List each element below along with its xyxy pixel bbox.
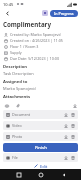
staticText: Supply [10, 50, 22, 55]
staticText: Description [3, 64, 28, 70]
staticText: Assigned to [3, 79, 28, 85]
button[interactable]: Add photo [3, 102, 10, 109]
button[interactable]: Document [3, 110, 78, 119]
button[interactable]: Download Photo [63, 134, 69, 140]
staticText: Complimentary Supplies [3, 20, 78, 28]
button[interactable]: Delete Document [70, 112, 76, 118]
button[interactable]: Delete Photo [70, 134, 76, 140]
staticText: File [12, 155, 18, 160]
staticText: 10:45 [3, 2, 14, 7]
staticText: In Progress [54, 11, 74, 16]
button[interactable]: Video [3, 121, 78, 130]
button[interactable]: Download Video [63, 123, 69, 129]
staticText: Created by: Marko Spanojević [10, 32, 62, 37]
button[interactable]: Status [42, 10, 48, 16]
staticText: Video [12, 123, 22, 128]
button[interactable]: File [3, 153, 78, 162]
staticText: Task Description [3, 71, 34, 76]
staticText: Marko Spanojević [3, 86, 37, 91]
button[interactable]: Edit [3, 163, 78, 169]
button[interactable]: In Progress [50, 10, 78, 17]
staticText: Document [12, 112, 31, 117]
button[interactable]: Delete Video [70, 123, 76, 129]
staticText: Floor 1 / Room 3 [10, 44, 39, 49]
staticText: Finish [35, 145, 47, 151]
button[interactable]: Back [59, 170, 68, 179]
button[interactable]: Back [3, 9, 11, 17]
button[interactable]: Photo [3, 132, 78, 141]
button[interactable]: Download all [71, 102, 78, 109]
staticText: Edit [40, 164, 48, 169]
staticText: Created on : 4/26/2023 | 11:05 [10, 38, 63, 43]
staticText: Photo [12, 134, 23, 139]
staticText: Attachments [3, 94, 31, 100]
button[interactable]: Recent apps [14, 170, 23, 179]
button[interactable]: Add attachment [14, 102, 21, 109]
button[interactable]: Delete File [70, 155, 76, 161]
staticText: Due Date: 5/12/2023 | 10:00 [10, 56, 60, 61]
button[interactable]: Finish [3, 143, 78, 152]
button[interactable]: Download Document [63, 112, 69, 118]
button[interactable]: Home [36, 170, 45, 179]
button[interactable]: Download File [63, 155, 69, 161]
